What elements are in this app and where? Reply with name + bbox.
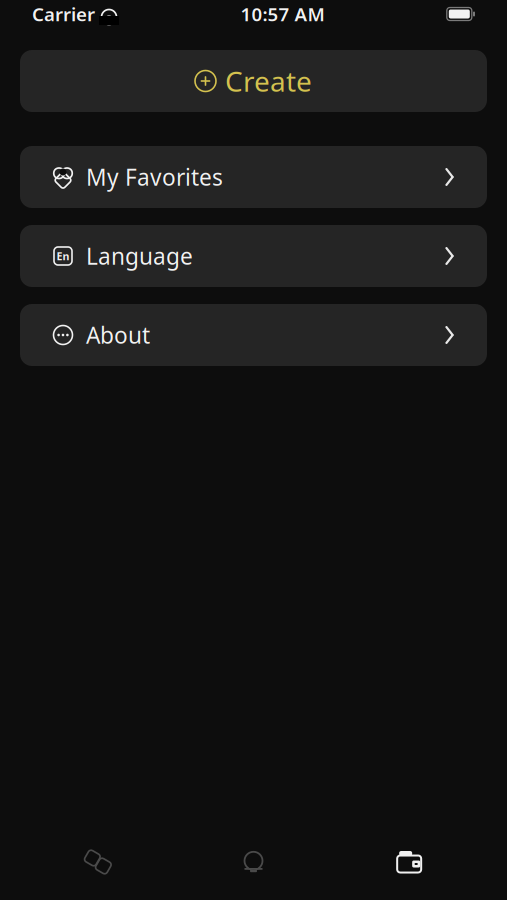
button[interactable]: About xyxy=(20,304,487,366)
button[interactable]: Wallet xyxy=(331,836,487,888)
button[interactable]: Network xyxy=(20,836,176,888)
staticText: Create xyxy=(225,62,312,100)
button[interactable]: Notifications xyxy=(176,836,331,888)
staticText: Language xyxy=(86,241,193,271)
button[interactable]: Create xyxy=(20,50,487,112)
staticText: My Favorites xyxy=(86,162,223,192)
staticText: En xyxy=(56,249,69,263)
staticText: About xyxy=(86,320,150,350)
staticText: Carrier xyxy=(32,2,95,26)
staticText: 10:57 AM xyxy=(240,2,324,26)
button[interactable]: My Favorites xyxy=(20,146,487,208)
button[interactable]: En xyxy=(20,225,487,287)
